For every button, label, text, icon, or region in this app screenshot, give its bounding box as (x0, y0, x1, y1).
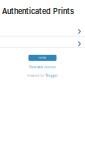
staticText: Authenticated Prints (2, 7, 74, 16)
button[interactable]: Home (28, 55, 56, 61)
button[interactable]: Open post (0, 29, 85, 36)
staticText: Home (38, 56, 46, 59)
button[interactable]: Blogger. (45, 74, 58, 77)
button[interactable]: Open post (0, 37, 85, 47)
staticText: Blogger. (45, 74, 58, 77)
button[interactable]: View web version (29, 65, 56, 69)
staticText: View web version (29, 65, 56, 69)
staticText: Powered by (26, 74, 45, 77)
